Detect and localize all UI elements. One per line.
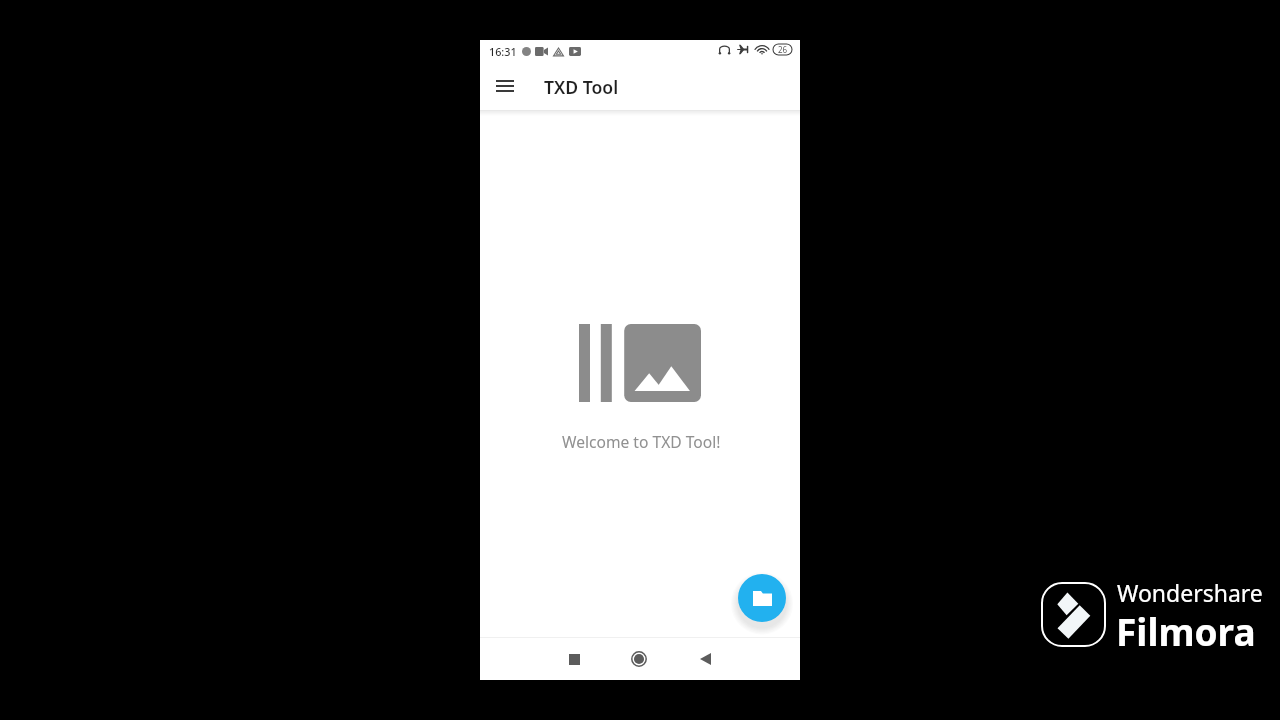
staticText: Welcome to TXD Tool! [562,431,721,452]
staticText: TXD Tool [544,75,619,99]
button[interactable]: Home [620,640,658,678]
staticText: Wondershare [1117,577,1263,608]
button[interactable]: Recent apps [555,640,593,678]
button[interactable]: Back [686,640,724,678]
button[interactable]: Open folder [738,574,786,622]
staticText: Filmora [1116,606,1256,656]
button[interactable]: Open navigation menu [485,66,525,106]
staticText: 26 [778,44,788,55]
staticText: 16:31 [489,44,517,59]
